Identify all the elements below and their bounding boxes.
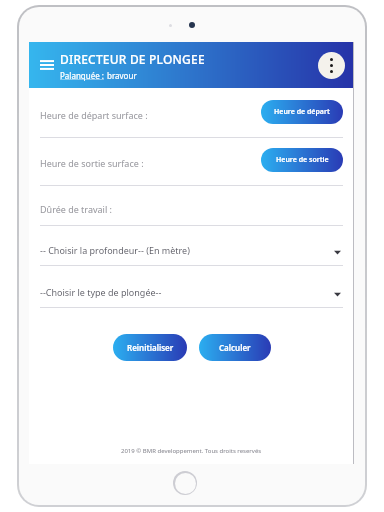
button[interactable]: --Choisir le type de plongée--: [40, 284, 343, 308]
staticText: Heure de départ surface :: [40, 109, 148, 121]
staticText: Heure de départ: [274, 107, 330, 117]
staticText: Heure de sortie surface :: [40, 157, 144, 169]
button[interactable]: Reinitialiser: [113, 334, 187, 361]
button[interactable]: Heure de départ: [261, 100, 343, 124]
staticText: --Choisir le type de plongée--: [40, 286, 162, 298]
staticText: Dûrée de travail :: [40, 203, 112, 215]
button[interactable]: Calculer: [199, 334, 271, 361]
button[interactable]: Palanquée :: [60, 70, 104, 81]
button[interactable]: Dûrée de travail :: [40, 200, 343, 226]
staticText: DIRECTEUR DE PLONGEE: [60, 51, 205, 67]
staticText: Calculer: [219, 342, 251, 353]
staticText: Reinitialiser: [127, 342, 174, 353]
staticText: Heure de sortie: [276, 155, 329, 165]
button[interactable]: More options: [318, 52, 345, 79]
button[interactable]: -- Choisir la profondeur-- (En mètre): [40, 242, 343, 266]
staticText: -- Choisir la profondeur-- (En mètre): [40, 244, 190, 256]
button[interactable]: Home: [173, 471, 197, 495]
staticText: 2019 © BMR developpement. Tous droits re…: [121, 447, 262, 455]
staticText: bravour: [107, 70, 137, 81]
button[interactable]: Open navigation menu: [36, 54, 58, 76]
button[interactable]: Heure de sortie: [261, 148, 343, 172]
